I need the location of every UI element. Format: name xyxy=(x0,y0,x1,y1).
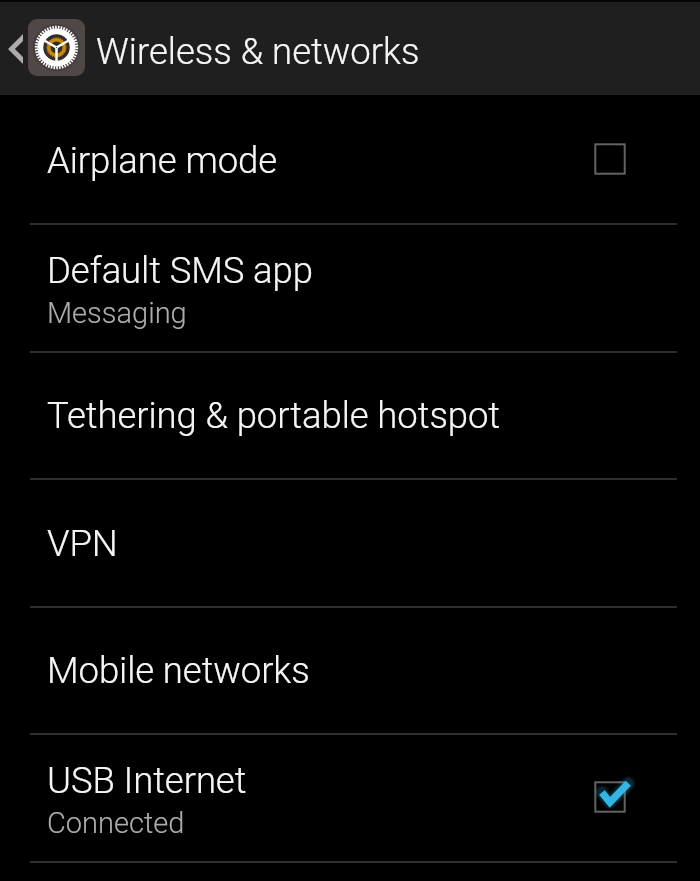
button[interactable]: Airplane mode xyxy=(0,95,700,223)
staticText: Airplane mode xyxy=(47,139,278,182)
button[interactable]: USB Internet xyxy=(0,733,700,861)
staticText: Wireless & networks xyxy=(96,30,420,73)
staticText: Messaging xyxy=(47,296,187,330)
button[interactable]: Unchecked xyxy=(586,135,634,183)
staticText: Tethering & portable hotspot xyxy=(47,394,500,437)
button[interactable]: Navigate up xyxy=(0,0,86,95)
button[interactable]: Mobile networks xyxy=(0,605,700,733)
button[interactable]: Checked xyxy=(586,773,634,821)
staticText: USB Internet xyxy=(47,759,247,802)
button[interactable]: VPN xyxy=(0,478,700,606)
staticText: Connected xyxy=(47,806,185,840)
staticText: VPN xyxy=(47,522,118,565)
staticText: Default SMS app xyxy=(47,249,313,292)
button[interactable]: Default SMS app xyxy=(0,223,700,351)
staticText: Mobile networks xyxy=(47,649,310,692)
button[interactable]: Tethering & portable hotspot xyxy=(0,350,700,478)
